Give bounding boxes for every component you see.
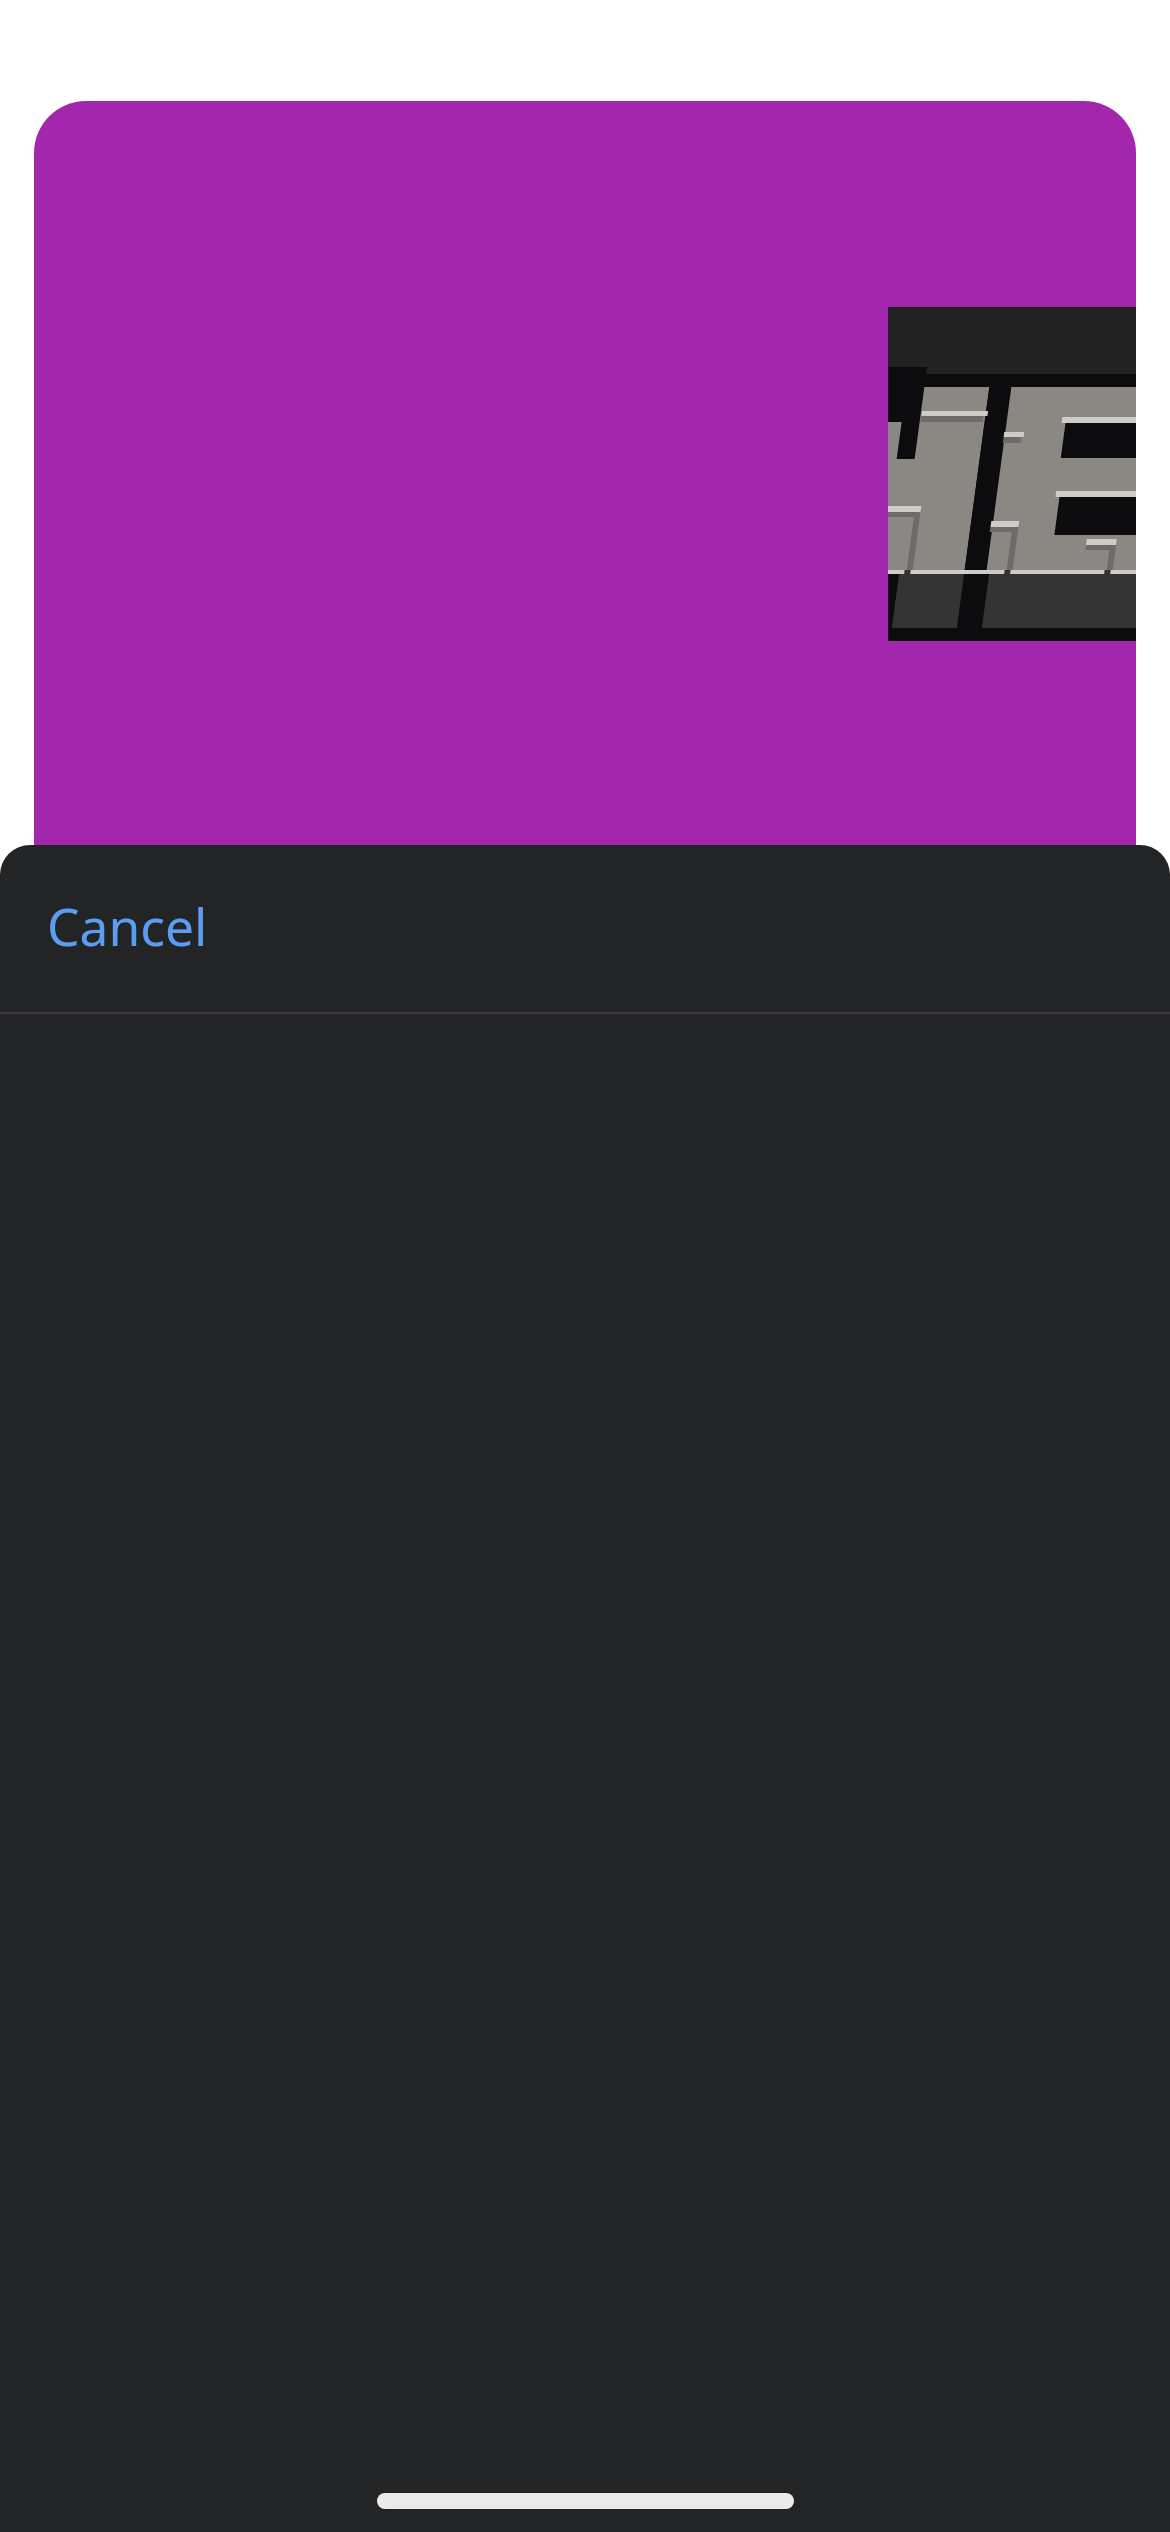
button[interactable]: Shared content preview — [34, 101, 1136, 846]
button[interactable]: Cancel — [0, 845, 1170, 1012]
staticText: Cancel — [47, 891, 208, 961]
